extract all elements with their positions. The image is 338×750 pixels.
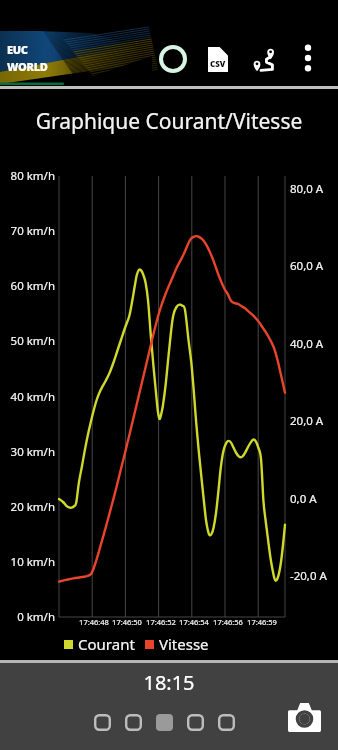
staticText: 17:46:52 bbox=[139, 617, 183, 627]
staticText: 80 km/h bbox=[0, 168, 55, 184]
staticText: 18:15 bbox=[0, 669, 338, 696]
button[interactable]: Show route bbox=[241, 38, 285, 82]
staticText: EUC bbox=[7, 42, 28, 57]
staticText: 30 km/h bbox=[0, 444, 55, 460]
staticText: 50 km/h bbox=[0, 333, 55, 349]
staticText: Vitesse bbox=[159, 634, 209, 654]
button[interactable]: EUC World bbox=[0, 31, 152, 89]
button[interactable]: Start recording bbox=[150, 36, 195, 81]
staticText: 0 km/h bbox=[0, 609, 55, 625]
button[interactable]: Page 2 bbox=[125, 714, 142, 731]
staticText: 0,0 A bbox=[290, 491, 317, 507]
button[interactable]: Page 5 bbox=[218, 714, 235, 731]
staticText: 17:46:59 bbox=[240, 617, 284, 627]
staticText: -20,0 A bbox=[290, 568, 327, 584]
staticText: 40,0 A bbox=[290, 336, 324, 352]
staticText: 20,0 A bbox=[290, 413, 324, 429]
staticText: 60 km/h bbox=[0, 278, 55, 294]
button[interactable]: Page 1 bbox=[94, 714, 111, 731]
staticText: 17:46:50 bbox=[105, 617, 149, 627]
staticText: WORLD bbox=[7, 59, 48, 74]
button[interactable]: Take screenshot bbox=[284, 697, 325, 738]
staticText: Courant bbox=[78, 634, 135, 654]
button[interactable]: Export CSV bbox=[196, 37, 240, 81]
staticText: 17:46:56 bbox=[206, 617, 250, 627]
staticText: 20 km/h bbox=[0, 499, 55, 515]
staticText: 17:46:54 bbox=[172, 617, 216, 627]
button[interactable]: More options bbox=[288, 38, 328, 78]
staticText: 60,0 A bbox=[290, 258, 324, 274]
staticText: 10 km/h bbox=[0, 554, 55, 570]
staticText: 80,0 A bbox=[290, 181, 324, 197]
staticText: 40 km/h bbox=[0, 389, 55, 405]
staticText: CSV bbox=[210, 58, 226, 69]
staticText: Graphique Courant/Vitesse bbox=[0, 107, 338, 136]
staticText: 17:46:48 bbox=[72, 617, 116, 627]
button[interactable]: Page 3 bbox=[156, 714, 173, 731]
staticText: 70 km/h bbox=[0, 223, 55, 239]
button[interactable]: Page 4 bbox=[187, 714, 204, 731]
